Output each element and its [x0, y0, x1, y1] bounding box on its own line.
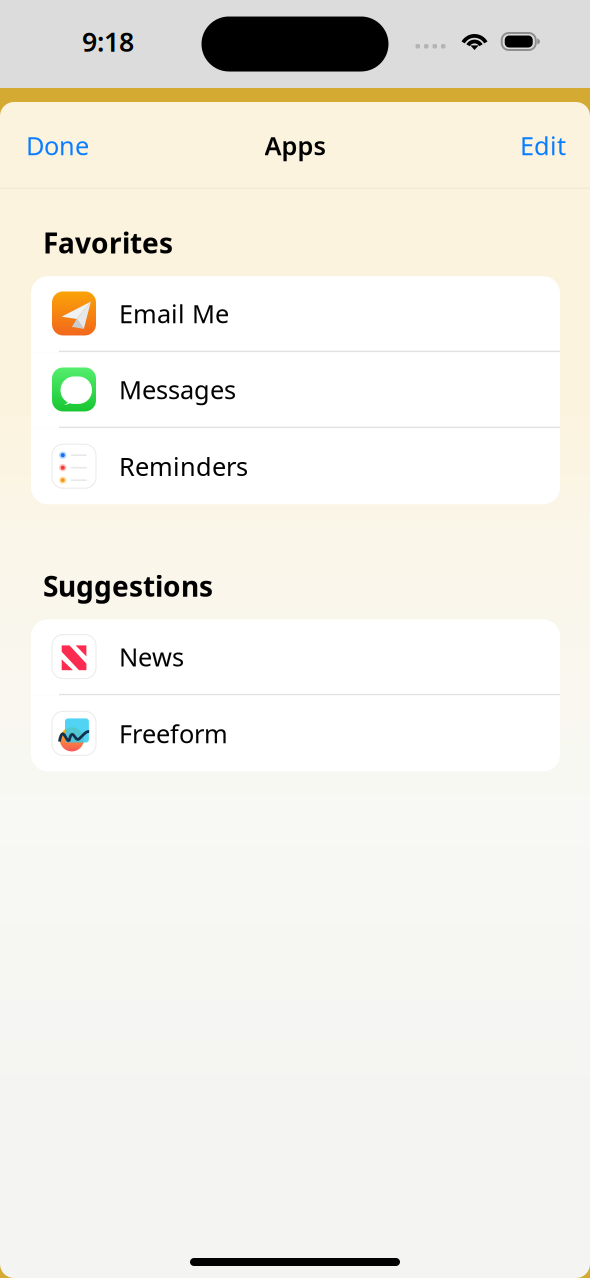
button[interactable]: Edit	[520, 129, 566, 162]
staticText: Freeform	[119, 716, 228, 750]
staticText: Apps	[264, 129, 325, 162]
staticText: 9:18	[82, 24, 134, 59]
button[interactable]: Email Me	[31, 276, 560, 352]
staticText: Done	[26, 129, 89, 162]
staticText: Reminders	[119, 449, 248, 483]
button[interactable]: Freeform	[31, 695, 560, 771]
staticText: Edit	[520, 129, 566, 162]
staticText: News	[119, 640, 184, 673]
button[interactable]: Done	[26, 129, 89, 162]
staticText: Email Me	[119, 297, 229, 330]
staticText: Messages	[119, 373, 236, 406]
button[interactable]: News	[31, 619, 560, 695]
button[interactable]: Messages	[31, 352, 560, 428]
staticText: Suggestions	[43, 567, 213, 604]
button[interactable]: Reminders	[31, 428, 560, 504]
staticText: Favorites	[43, 224, 173, 261]
